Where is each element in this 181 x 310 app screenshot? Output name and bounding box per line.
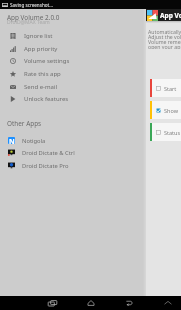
button[interactable]: Home xyxy=(84,296,98,310)
staticText: App Volume 2.0.0 xyxy=(7,13,60,22)
staticText: Automatically Adjust the volume of each … xyxy=(148,28,181,49)
staticText: App priority xyxy=(24,45,58,53)
staticText: Ignore list xyxy=(24,32,53,40)
staticText: Droid Dictate & Ctrl xyxy=(22,149,75,157)
button[interactable]: Rate this app xyxy=(0,68,146,80)
button[interactable]: Ignore list xyxy=(0,30,146,42)
staticText: Other Apps xyxy=(7,119,42,128)
button[interactable]: Show p xyxy=(150,101,181,119)
staticText: App Volume xyxy=(160,11,181,20)
button[interactable]: App priority xyxy=(0,43,146,55)
button[interactable]: Start A xyxy=(150,79,181,97)
staticText: Volume settings xyxy=(24,57,70,65)
button[interactable]: N xyxy=(0,134,146,147)
staticText: Notigola xyxy=(22,137,46,145)
staticText: Status xyxy=(164,129,181,136)
button[interactable]: Back xyxy=(122,296,136,310)
button[interactable]: Volume settings xyxy=(0,55,146,67)
staticText: Start A xyxy=(164,85,181,92)
button[interactable]: Status xyxy=(150,123,181,141)
staticText: Unlock features xyxy=(24,95,69,103)
button[interactable]: Droid Dictate Pro xyxy=(0,159,146,172)
staticText: Saving screenshot... xyxy=(10,2,53,8)
button[interactable]: Send e-mail xyxy=(0,81,146,93)
staticText: N xyxy=(9,137,15,144)
button[interactable]: Unlock features xyxy=(0,93,146,105)
staticText: Droid Dictate Pro xyxy=(22,162,69,170)
staticText: Send e-mail xyxy=(24,83,58,91)
button[interactable]: Droid Dictate & Ctrl xyxy=(0,146,146,159)
staticText: Rate this app xyxy=(24,70,61,78)
staticText: Show p xyxy=(164,107,181,114)
button[interactable]: Recents xyxy=(45,296,59,310)
button[interactable]: Hide navigation xyxy=(161,296,175,310)
staticText: DroiD@MAX Team xyxy=(7,19,50,26)
